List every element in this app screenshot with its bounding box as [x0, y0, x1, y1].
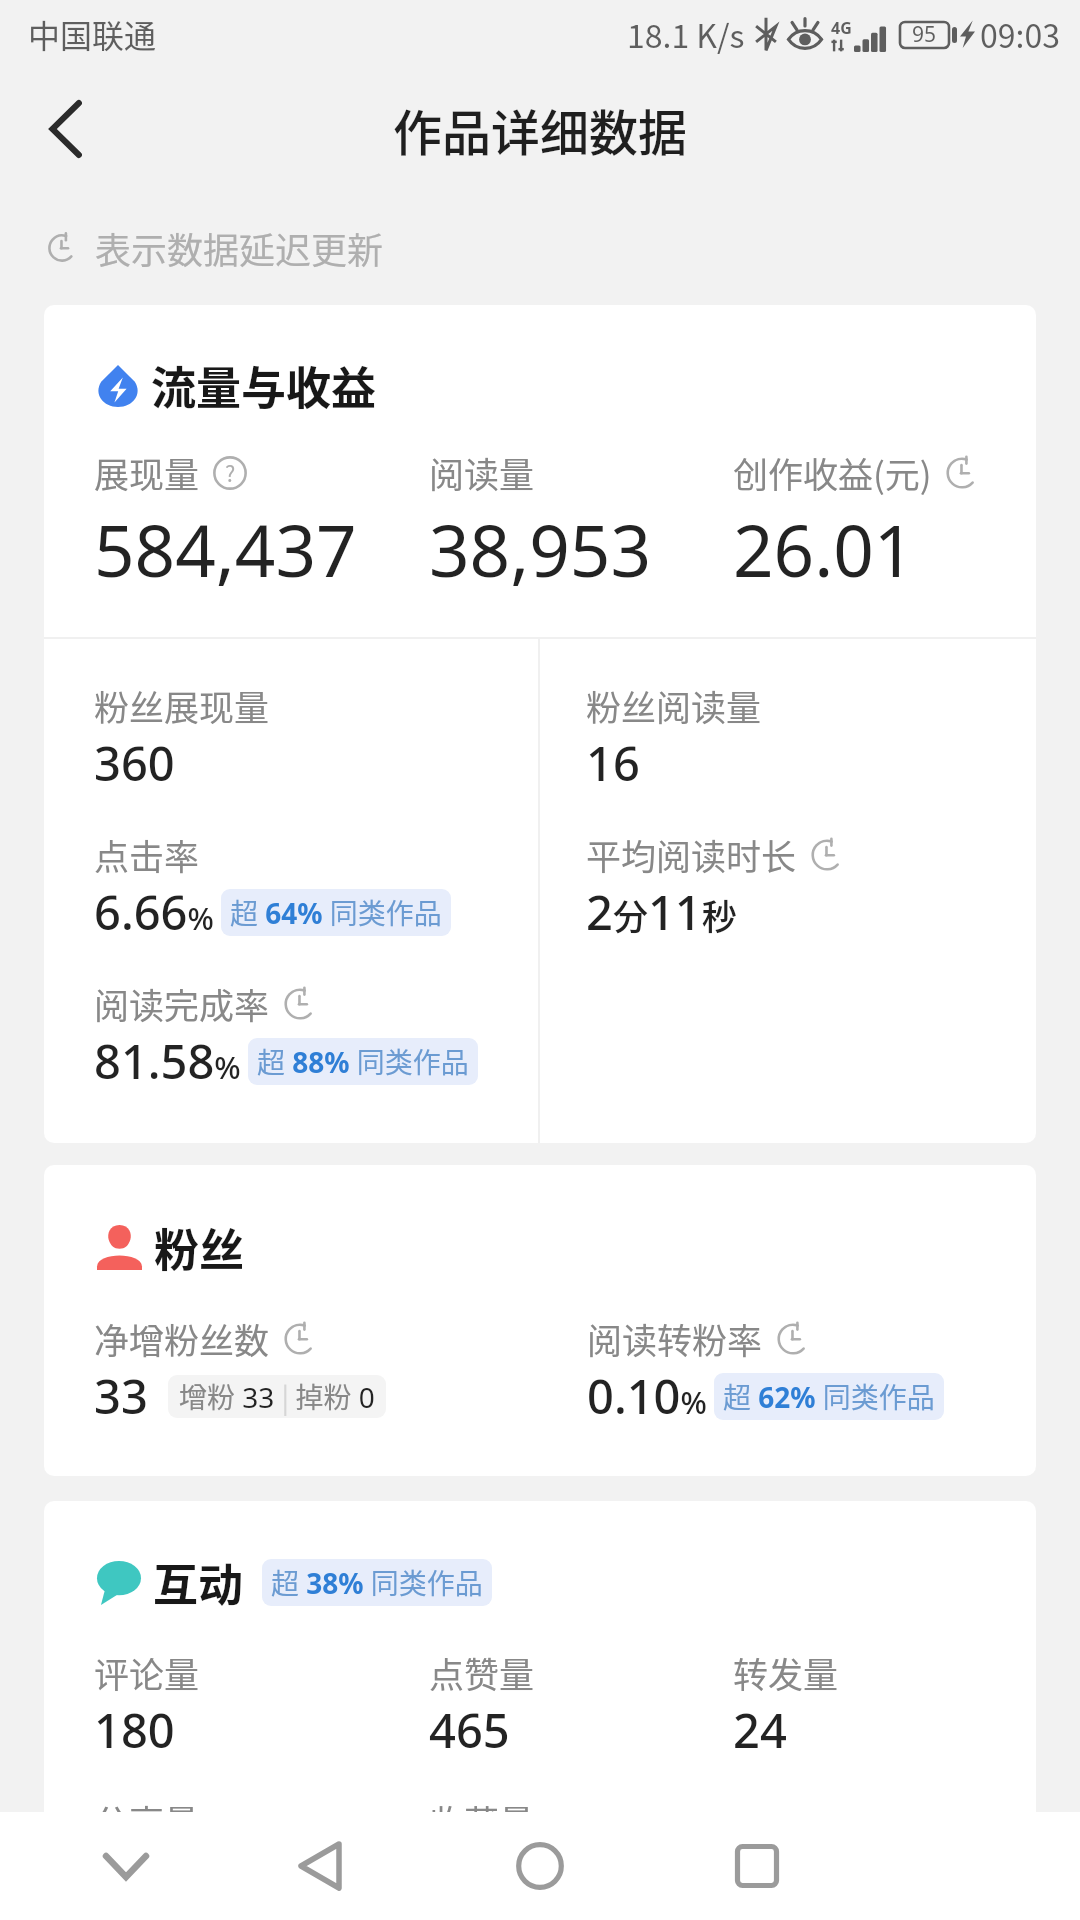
button[interactable]: Back	[265, 1812, 375, 1920]
staticText: 评论量	[94, 1647, 200, 1698]
staticText: 粉丝	[154, 1215, 245, 1280]
staticText: 粉丝展现量	[94, 680, 270, 731]
staticText: 33	[94, 1364, 148, 1428]
button[interactable]: Home	[485, 1812, 595, 1920]
staticText: 净增粉丝数	[94, 1313, 270, 1364]
staticText: 转发量	[733, 1647, 839, 1698]
button[interactable]: Hide keyboard	[71, 1812, 181, 1920]
staticText: 粉丝阅读量	[586, 680, 762, 731]
staticText: 平均阅读时长	[586, 829, 797, 880]
staticText: 超 88% 同类作品	[257, 1041, 469, 1082]
staticText: 24	[733, 1698, 787, 1762]
staticText: 收藏量	[429, 1795, 535, 1846]
staticText: 09:03	[980, 11, 1060, 57]
staticText: 阅读完成率	[94, 978, 270, 1029]
staticText: 展现量	[94, 447, 200, 498]
staticText: 81.58%	[94, 1029, 241, 1093]
staticText: 4G	[831, 17, 852, 39]
staticText: ?	[225, 457, 236, 489]
staticText: 38,953	[429, 501, 652, 598]
staticText: 流量与收益	[151, 353, 377, 418]
staticText: 作品详细数据	[393, 94, 688, 165]
staticText: 6.66%	[94, 880, 214, 944]
staticText: 180	[94, 1698, 175, 1762]
staticText: 18.1 K/s	[627, 11, 745, 57]
staticText: 584,437	[94, 501, 357, 598]
staticText: 点赞量	[429, 1647, 535, 1698]
staticText: 中国联通	[28, 11, 157, 57]
staticText: 26.01	[733, 501, 915, 598]
staticText: 360	[94, 731, 175, 795]
staticText: 95	[912, 20, 937, 49]
button[interactable]: Recents	[702, 1812, 812, 1920]
staticText: 0.10%	[587, 1364, 707, 1428]
staticText: 16	[586, 731, 640, 795]
staticText: 阅读转粉率	[587, 1313, 763, 1364]
button[interactable]: Back	[16, 79, 116, 179]
staticText: 分享量	[94, 1795, 200, 1846]
staticText: 2分11秒	[586, 880, 737, 944]
staticText: 超 64% 同类作品	[230, 892, 442, 933]
staticText: 阅读量	[429, 447, 535, 498]
staticText: 超 62% 同类作品	[723, 1376, 935, 1417]
staticText: 465	[429, 1698, 510, 1762]
staticText: 超 38% 同类作品	[271, 1562, 483, 1603]
staticText: 表示数据延迟更新	[95, 222, 384, 274]
staticText: 互动	[153, 1550, 244, 1615]
staticText: 12	[94, 1846, 148, 1910]
staticText: 增粉 33 | 掉粉 0	[179, 1376, 375, 1417]
staticText: 创作收益(元)	[733, 447, 932, 498]
staticText: 点击率	[94, 829, 200, 880]
